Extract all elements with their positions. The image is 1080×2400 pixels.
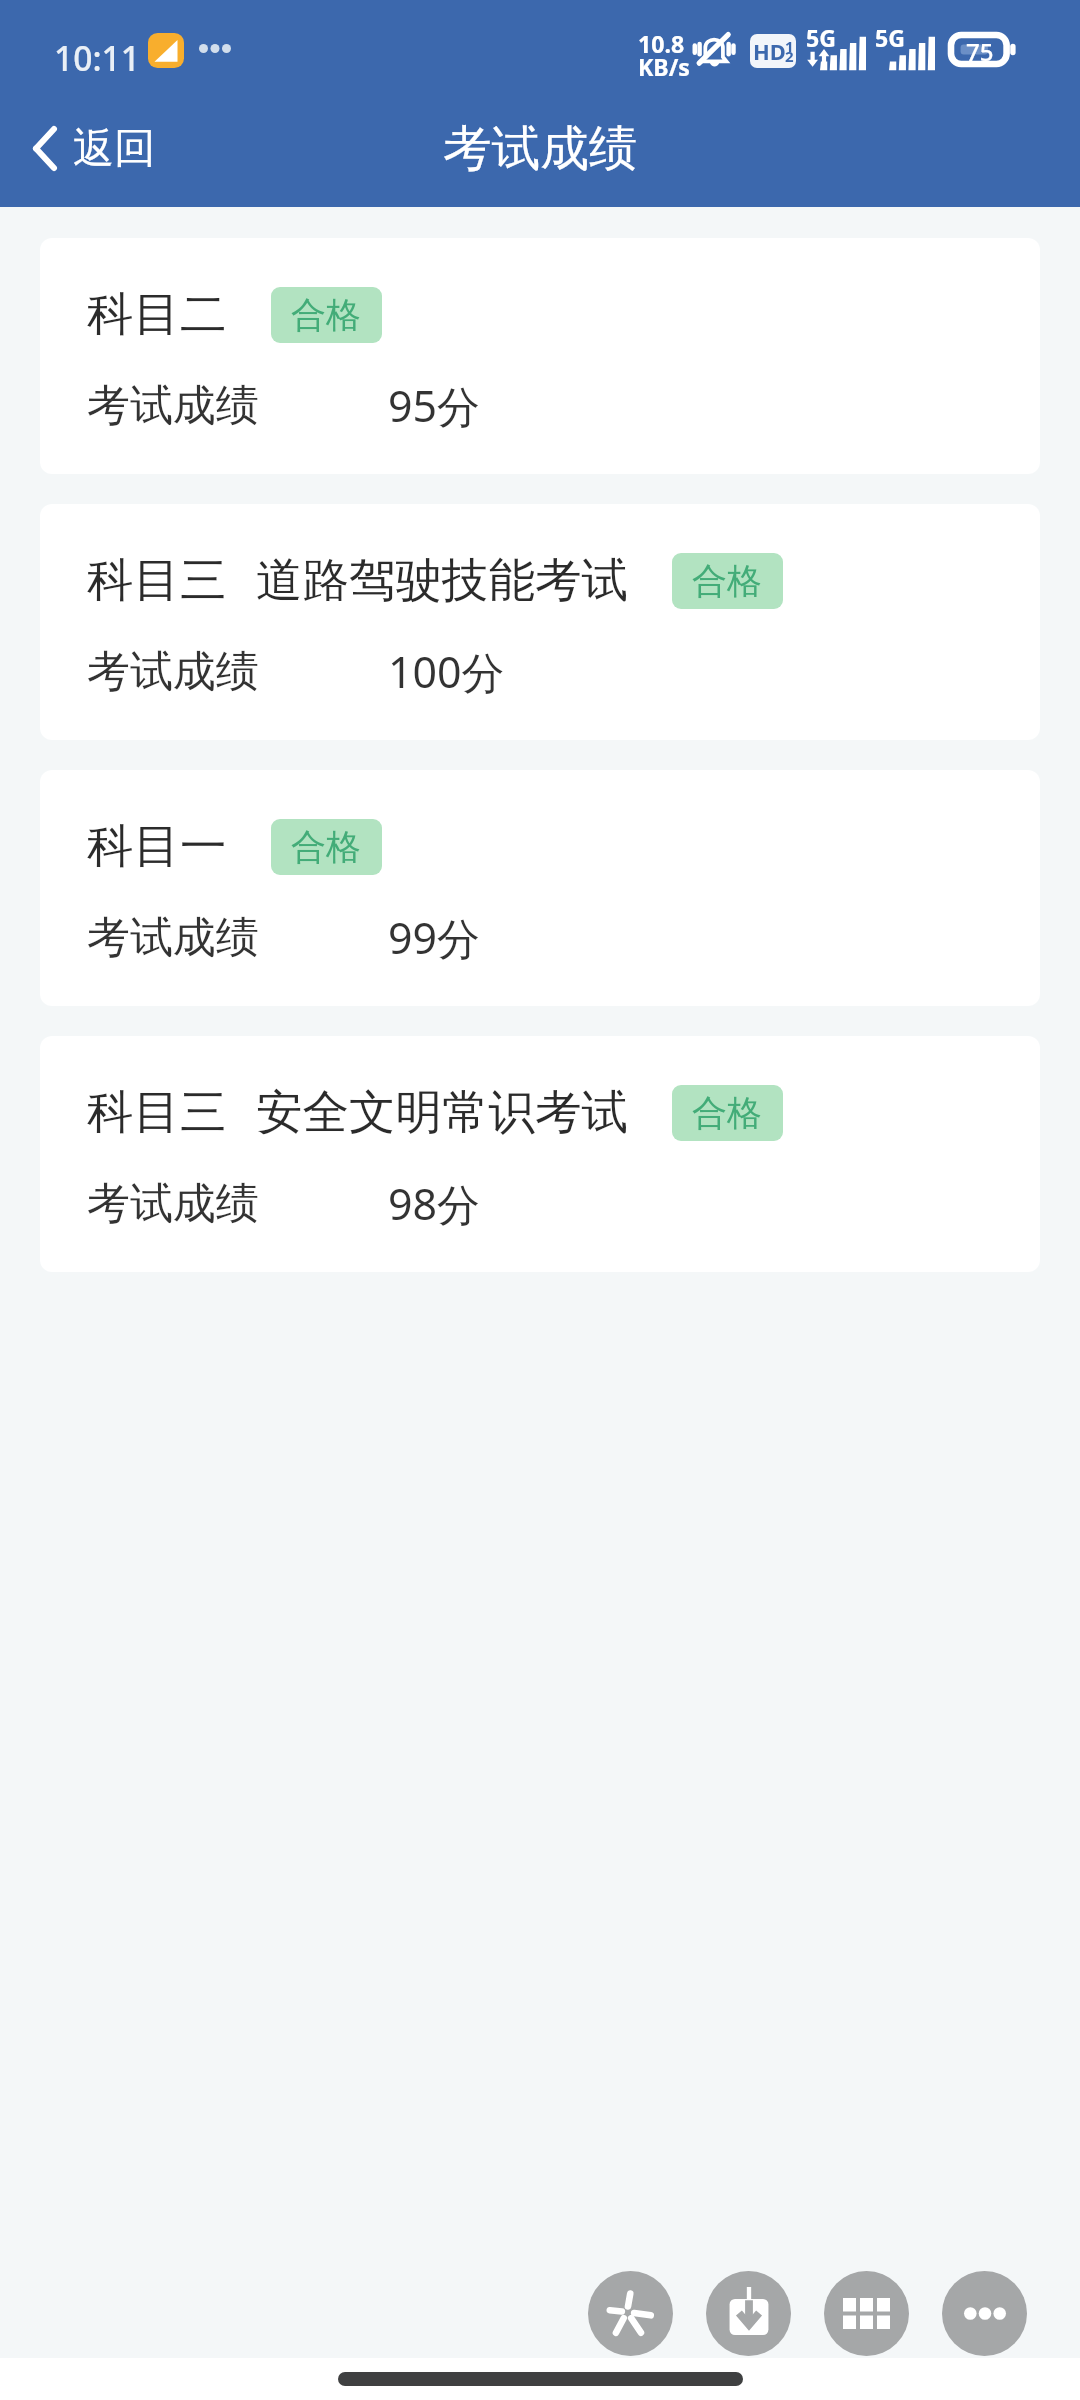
staticText: 5G: [875, 28, 905, 52]
button[interactable]: More: [942, 2271, 1027, 2356]
staticText: 合格: [291, 293, 362, 337]
staticText: HD: [753, 37, 786, 67]
button[interactable]: 科目一: [40, 770, 1040, 1006]
staticText: 安全文明常识考试: [256, 1083, 628, 1142]
staticText: 合格: [692, 559, 763, 603]
staticText: 考试成绩: [87, 645, 259, 699]
button[interactable]: 科目三: [40, 504, 1040, 740]
staticText: 合格: [291, 825, 362, 869]
staticText: 考试成绩: [87, 1177, 259, 1231]
staticText: 75: [966, 35, 994, 64]
staticText: 返回: [73, 122, 156, 174]
staticText: 100分: [388, 642, 505, 701]
staticText: 2: [785, 46, 794, 66]
staticText: 科目二: [87, 285, 227, 344]
staticText: 1: [785, 36, 794, 56]
staticText: 考试成绩: [443, 118, 638, 179]
button[interactable]: 科目三: [40, 1036, 1040, 1272]
button[interactable]: 科目二: [40, 238, 1040, 474]
staticText: 科目三: [87, 551, 227, 610]
staticText: 98分: [388, 1174, 480, 1233]
staticText: 95分: [388, 376, 480, 435]
button[interactable]: Download: [706, 2271, 791, 2356]
button[interactable]: Grid: [824, 2271, 909, 2356]
staticText: 99分: [388, 908, 480, 967]
staticText: 10:11: [54, 35, 140, 81]
staticText: 考试成绩: [87, 379, 259, 433]
staticText: 科目三: [87, 1083, 227, 1142]
staticText: 10.8 KB/s: [638, 28, 690, 82]
staticText: 科目一: [87, 817, 227, 876]
button[interactable]: Refresh: [588, 2271, 673, 2356]
staticText: 5G: [806, 28, 836, 52]
staticText: 合格: [692, 1091, 763, 1135]
staticText: 道路驾驶技能考试: [256, 551, 628, 610]
button[interactable]: 返回: [0, 107, 192, 189]
staticText: 考试成绩: [87, 911, 259, 965]
